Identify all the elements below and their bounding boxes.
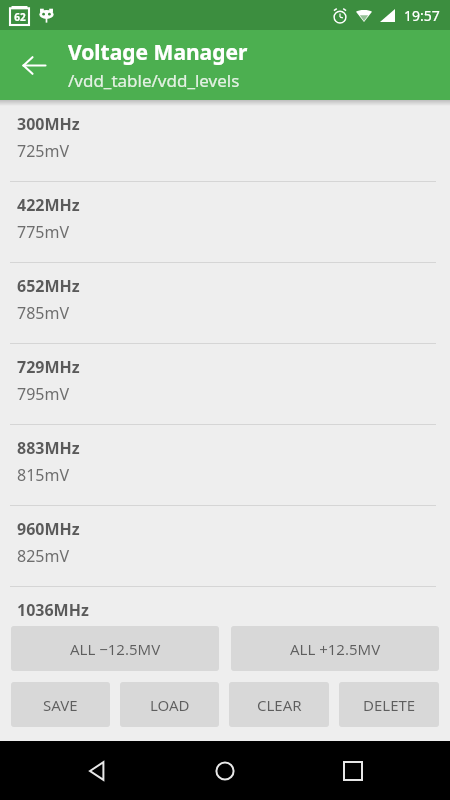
- staticText: 300MHz: [17, 113, 80, 135]
- staticText: DELETE: [363, 695, 416, 715]
- staticText: 960MHz: [17, 518, 80, 540]
- staticText: 825mV: [17, 545, 70, 567]
- button[interactable]: 652MHz: [0, 262, 450, 343]
- button[interactable]: 300MHz: [0, 100, 450, 181]
- staticText: 652MHz: [17, 275, 80, 297]
- staticText: 422MHz: [17, 194, 80, 216]
- staticText: 729MHz: [17, 356, 80, 378]
- staticText: Voltage Manager: [68, 38, 248, 67]
- staticText: ALL −12.5MV: [70, 639, 161, 659]
- button[interactable]: 422MHz: [0, 181, 450, 262]
- button[interactable]: Home: [194, 741, 256, 800]
- staticText: 795mV: [17, 383, 70, 405]
- button[interactable]: DELETE: [339, 682, 439, 727]
- staticText: 19:57: [404, 6, 440, 25]
- staticText: 883MHz: [17, 437, 80, 459]
- staticText: 62: [14, 10, 26, 24]
- button[interactable]: 729MHz: [0, 343, 450, 424]
- staticText: 785mV: [17, 302, 70, 324]
- button[interactable]: Back: [66, 741, 128, 800]
- button[interactable]: ALL +12.5MV: [231, 626, 439, 671]
- button[interactable]: ALL −12.5MV: [11, 626, 219, 671]
- button[interactable]: 1036MHz: [0, 586, 450, 626]
- button[interactable]: LOAD: [120, 682, 219, 727]
- staticText: 775mV: [17, 221, 70, 243]
- button[interactable]: SAVE: [11, 682, 110, 727]
- button[interactable]: 960MHz: [0, 505, 450, 586]
- staticText: ALL +12.5MV: [290, 639, 381, 659]
- button[interactable]: Recents: [322, 741, 384, 800]
- staticText: LOAD: [150, 695, 190, 715]
- staticText: SAVE: [43, 695, 78, 715]
- staticText: 1036MHz: [17, 599, 89, 621]
- button[interactable]: Back: [0, 30, 68, 100]
- button[interactable]: 883MHz: [0, 424, 450, 505]
- staticText: /vdd_table/vdd_levels: [68, 69, 240, 92]
- staticText: 725mV: [17, 140, 70, 162]
- staticText: 815mV: [17, 464, 70, 486]
- button[interactable]: CLEAR: [229, 682, 329, 727]
- staticText: CLEAR: [257, 695, 302, 715]
